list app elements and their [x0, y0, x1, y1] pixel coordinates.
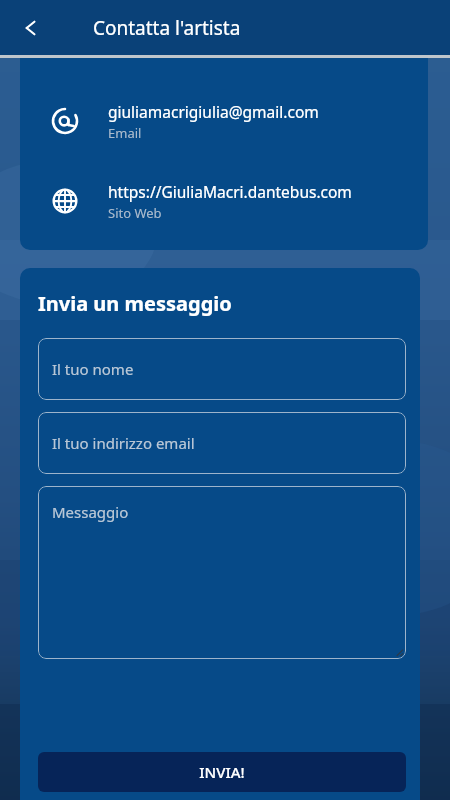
button[interactable]: Il tuo nome — [38, 338, 406, 400]
button[interactable]: INVIA! — [38, 752, 406, 792]
staticText: INVIA! — [199, 762, 245, 782]
button[interactable]: Il tuo indirizzo email — [38, 412, 406, 474]
staticText: Il tuo indirizzo email — [52, 433, 195, 453]
staticText: https://GiuliaMacri.dantebus.com — [108, 181, 352, 202]
staticText: Invia un messaggio — [38, 290, 232, 317]
button[interactable]: Messaggio — [38, 486, 406, 659]
staticText: giuliamacrigiulia@gmail.com — [108, 101, 319, 122]
staticText: Il tuo nome — [52, 359, 134, 379]
button[interactable]: Back — [8, 6, 52, 50]
staticText: Sito Web — [108, 204, 162, 222]
button[interactable]: giuliamacrigiulia@gmail.com — [20, 88, 428, 154]
button[interactable]: https://GiuliaMacri.dantebus.com — [20, 168, 428, 234]
staticText: Messaggio — [52, 502, 129, 522]
staticText: Contatta l'artista — [93, 15, 241, 41]
staticText: Email — [108, 124, 142, 142]
